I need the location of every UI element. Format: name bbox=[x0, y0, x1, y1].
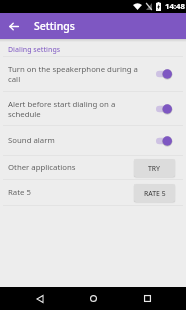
staticText: Turn on the speakerphone during a call bbox=[8, 64, 140, 84]
button[interactable]: Back bbox=[28, 287, 51, 310]
button[interactable]: RATE 5 bbox=[134, 184, 175, 202]
staticText: Alert before start dialing on a schedule bbox=[8, 99, 140, 119]
button[interactable]: TRY bbox=[134, 159, 175, 177]
staticText: Rate 5 bbox=[8, 187, 134, 198]
button[interactable]: Sound alarm bbox=[0, 126, 186, 155]
staticText: TRY bbox=[148, 164, 161, 173]
button[interactable]: Back bbox=[9, 13, 19, 39]
staticText: RATE 5 bbox=[144, 189, 166, 198]
button[interactable]: Alert before start dialing on a schedule bbox=[0, 92, 186, 125]
button[interactable]: Recents bbox=[136, 287, 159, 310]
button[interactable]: Home bbox=[82, 287, 105, 310]
staticText: 14:48 bbox=[165, 1, 186, 12]
staticText: Other applications bbox=[8, 162, 134, 173]
button[interactable]: Turn on the speakerphone during a call bbox=[0, 57, 186, 91]
staticText: Dialing settings bbox=[8, 45, 61, 55]
staticText: Settings bbox=[34, 19, 75, 33]
staticText: Sound alarm bbox=[8, 135, 55, 146]
